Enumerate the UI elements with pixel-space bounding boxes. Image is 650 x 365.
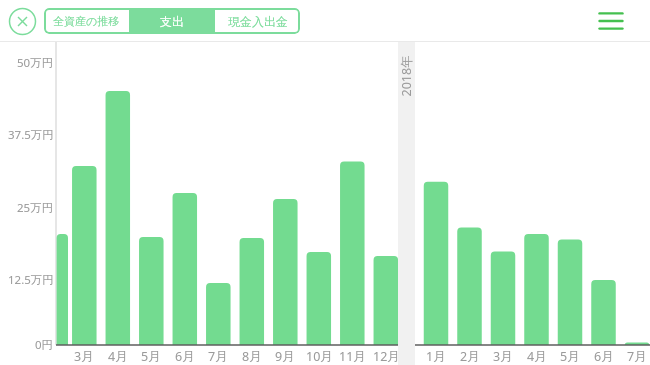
staticText: 2月 (460, 348, 480, 364)
staticText: 3月 (74, 348, 94, 364)
staticText: 7月 (627, 348, 647, 364)
staticText: 1月 (426, 348, 446, 364)
staticText: 5月 (141, 348, 161, 364)
staticText: 5月 (560, 348, 580, 364)
button[interactable] (6, 5, 38, 37)
staticText: 37.5万円 (8, 127, 54, 143)
staticText: 3月 (493, 348, 513, 364)
staticText: 4月 (108, 348, 128, 364)
button[interactable]: 支出 (129, 8, 215, 34)
staticText: 10月 (306, 348, 333, 364)
staticText: 4月 (527, 348, 547, 364)
staticText: 9月 (275, 348, 295, 364)
button[interactable]: 現金入出金 (215, 8, 300, 34)
button[interactable]: 全資産の推移 (44, 8, 129, 34)
staticText: 2018年 (397, 54, 414, 96)
staticText: 6月 (594, 348, 614, 364)
staticText: 50万円 (17, 55, 54, 71)
staticText: 7月 (208, 348, 228, 364)
staticText: 12月 (373, 348, 400, 364)
staticText: 支出 (160, 14, 184, 29)
staticText: 12.5万円 (8, 272, 54, 288)
staticText: 8月 (242, 348, 262, 364)
staticText: 0円 (35, 337, 54, 353)
staticText: 現金入出金 (228, 14, 288, 29)
staticText: 25万円 (17, 200, 54, 216)
staticText: 全資産の推移 (53, 14, 120, 28)
staticText: 6月 (175, 348, 195, 364)
button[interactable] (588, 3, 634, 39)
staticText: 11月 (339, 348, 366, 364)
